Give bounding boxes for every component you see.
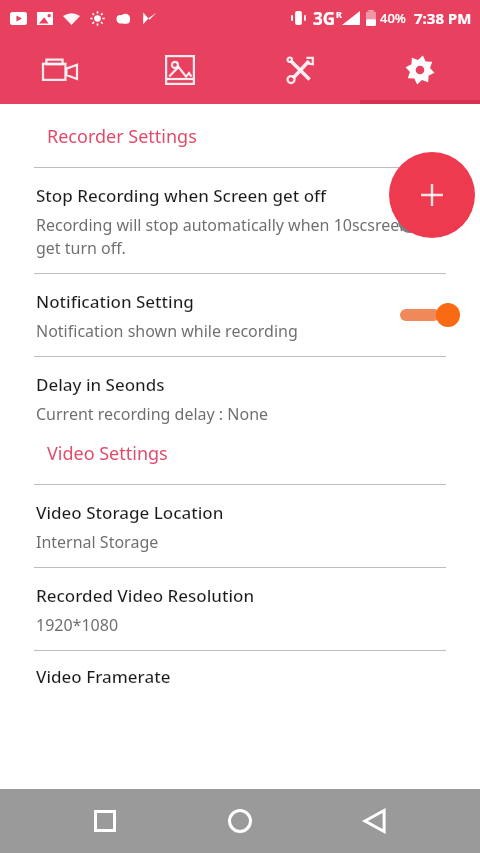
- staticText: Recording will stop automatically when 1…: [36, 214, 410, 259]
- staticText: Stop Recording when Screen get off: [36, 184, 327, 207]
- staticText: 7:38 PM: [414, 8, 472, 28]
- staticText: Video Settings: [47, 441, 168, 466]
- button[interactable]: Recorded Video Resolution: [0, 568, 480, 650]
- button[interactable]: Video Settings: [0, 441, 480, 466]
- button[interactable]: Add: [389, 152, 475, 238]
- button[interactable]: Notification Setting: [0, 274, 480, 356]
- button[interactable]: Video Storage Location: [0, 485, 480, 567]
- staticText: Delay in Seonds: [36, 373, 165, 396]
- button[interactable]: Settings: [360, 36, 480, 104]
- staticText: Notification shown while recording: [36, 320, 298, 342]
- staticText: Notification Setting: [36, 290, 194, 313]
- staticText: 3G: [313, 7, 336, 30]
- staticText: Video Storage Location: [36, 501, 224, 524]
- button[interactable]: Recorder Settings: [0, 124, 480, 149]
- button[interactable]: Delay in Seonds: [0, 357, 480, 439]
- staticText: Recorded Video Resolution: [36, 584, 255, 607]
- staticText: Recorder Settings: [47, 124, 197, 149]
- button[interactable]: Record: [0, 36, 120, 104]
- staticText: 1920*1080: [36, 614, 119, 636]
- button[interactable]: Home: [210, 791, 270, 851]
- button[interactable]: Back: [345, 791, 405, 851]
- staticText: 40%: [380, 9, 406, 27]
- staticText: Video Framerate: [36, 665, 171, 688]
- button[interactable]: Stop Recording when Screen get off: [0, 168, 480, 273]
- button[interactable]: Tools: [240, 36, 360, 104]
- button[interactable]: Recents: [75, 791, 135, 851]
- staticText: Internal Storage: [36, 531, 159, 553]
- staticText: Current recording delay : None: [36, 403, 269, 425]
- staticText: R: [336, 8, 342, 20]
- button[interactable]: Toggle off: [398, 207, 460, 235]
- button[interactable]: Gallery: [120, 36, 240, 104]
- button[interactable]: Toggle on: [398, 301, 460, 329]
